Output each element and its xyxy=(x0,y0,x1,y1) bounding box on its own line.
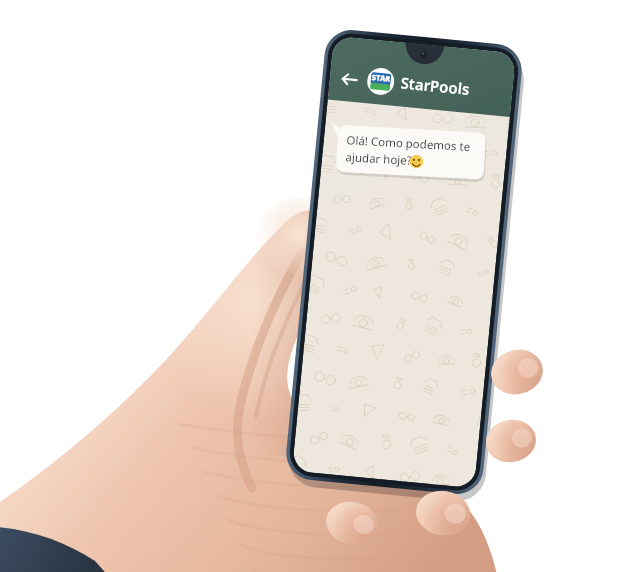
button[interactable]: StarPools WhatsApp chat on a phone held … xyxy=(0,0,618,572)
